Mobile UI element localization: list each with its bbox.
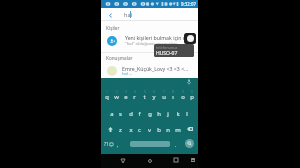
- staticText: j: [167, 110, 169, 118]
- staticText: HUSO-07: [156, 50, 178, 57]
- staticText: hal: [124, 11, 132, 18]
- staticText: x: [129, 126, 133, 134]
- button[interactable]: Switch keyboard: [186, 154, 199, 166]
- staticText: s: [119, 110, 122, 118]
- button[interactable]: n: [163, 124, 172, 136]
- staticText: ,: [117, 141, 119, 148]
- button[interactable]: Backspace: [183, 123, 197, 135]
- staticText: n: [166, 126, 170, 134]
- button[interactable]: c: [135, 124, 144, 136]
- staticText: u: [162, 93, 166, 101]
- staticText: c: [138, 126, 141, 134]
- staticText: b: [157, 126, 161, 134]
- button[interactable]: g: [145, 108, 154, 120]
- button[interactable]: s: [116, 108, 125, 120]
- button[interactable]: Recents: [167, 154, 185, 166]
- staticText: 2: [116, 89, 118, 94]
- button[interactable]: j: [163, 108, 172, 120]
- button[interactable]: Space: [130, 141, 170, 147]
- staticText: l: [186, 110, 188, 118]
- staticText: q: [105, 93, 109, 101]
- button[interactable]: a: [107, 108, 116, 120]
- button[interactable]: o: [178, 91, 187, 103]
- button[interactable]: Back: [114, 155, 132, 167]
- staticText: g: [148, 110, 152, 118]
- button[interactable]: Emre_Küçük_Lovy <3 <3 <...: [101, 62, 198, 78]
- staticText: f: [138, 110, 141, 118]
- staticText: 6: [153, 89, 155, 94]
- staticText: p: [190, 93, 194, 101]
- staticText: 1: [106, 89, 108, 94]
- staticText: z: [119, 126, 122, 134]
- staticText: Kişiler: [106, 25, 120, 31]
- button[interactable]: p: [187, 91, 196, 103]
- staticText: t: [143, 93, 146, 101]
- button[interactable]: k: [173, 108, 182, 120]
- staticText: Konuşmalar: [106, 55, 133, 61]
- staticText: Yeni kişileri bulmak için d: [125, 34, 187, 41]
- staticText: ı: [172, 93, 174, 101]
- staticText: ?1☺: [104, 141, 114, 148]
- button[interactable]: f: [135, 108, 144, 120]
- staticText: 7: [163, 89, 165, 94]
- staticText: w: [114, 93, 119, 101]
- staticText: k: [176, 110, 180, 118]
- staticText: a: [110, 110, 114, 118]
- staticText: telefonunuz: [156, 45, 178, 50]
- button[interactable]: ?1☺: [104, 138, 114, 150]
- button[interactable]: Back: [104, 9, 116, 21]
- staticText: y: [152, 93, 156, 101]
- button[interactable]: u: [159, 91, 168, 103]
- staticText: 3: [125, 89, 127, 94]
- button[interactable]: v: [145, 124, 154, 136]
- button[interactable]: q: [102, 91, 111, 103]
- button[interactable]: m: [173, 124, 182, 136]
- button[interactable]: h: [154, 108, 163, 120]
- staticText: e: [124, 93, 128, 101]
- button[interactable]: r: [130, 91, 139, 103]
- button[interactable]: Yeni kişileri bulmak için d: [101, 32, 198, 51]
- button[interactable]: b: [154, 124, 163, 136]
- button[interactable]: d: [126, 108, 135, 120]
- staticText: 8: [172, 89, 174, 94]
- button[interactable]: ı: [168, 91, 177, 103]
- button[interactable]: Search: [185, 139, 194, 148]
- staticText: o: [181, 93, 185, 101]
- button[interactable]: l: [182, 108, 191, 120]
- staticText: 9: [182, 89, 184, 94]
- staticText: v: [148, 126, 151, 134]
- button[interactable]: Home: [141, 155, 159, 167]
- staticText: d: [129, 110, 133, 118]
- button[interactable]: ,: [114, 138, 122, 150]
- button[interactable]: .: [172, 138, 180, 150]
- button[interactable]: Voice input: [185, 78, 193, 86]
- staticText: hal ...: [122, 71, 133, 77]
- button[interactable]: z: [116, 124, 125, 136]
- staticText: 0: [191, 89, 193, 94]
- button[interactable]: y: [149, 91, 158, 103]
- staticText: h: [157, 110, 161, 118]
- button[interactable]: Shift: [103, 123, 117, 135]
- staticText: 9:32:07: [181, 1, 196, 7]
- button[interactable]: x: [126, 124, 135, 136]
- staticText: 4: [134, 89, 136, 94]
- button[interactable]: e: [121, 91, 130, 103]
- staticText: r: [133, 93, 136, 101]
- button[interactable]: t: [140, 91, 149, 103]
- staticText: .: [175, 141, 177, 148]
- staticText: "hal" olduğunu varsayalım: [125, 41, 177, 47]
- staticText: 5: [144, 89, 146, 94]
- staticText: Emre_Küçük_Lovy <3 <3 <...: [122, 65, 189, 72]
- staticText: m: [175, 126, 181, 134]
- button[interactable]: w: [112, 91, 121, 103]
